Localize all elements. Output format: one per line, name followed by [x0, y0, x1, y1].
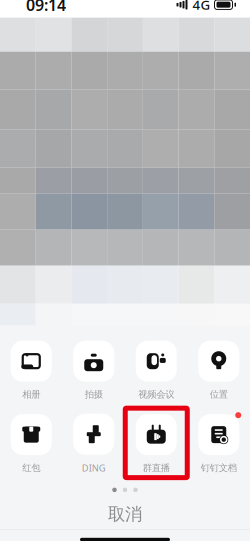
- staticText: DING: [82, 462, 106, 474]
- staticText: 视频会议: [138, 389, 174, 400]
- button[interactable]: 拍摄: [67, 339, 121, 400]
- button[interactable]: 群直播: [125, 408, 187, 478]
- staticText: 钉钉文档: [201, 462, 237, 474]
- button[interactable]: 位置: [192, 339, 246, 400]
- staticText: 拍摄: [85, 389, 103, 400]
- button[interactable]: 红包: [4, 412, 58, 474]
- staticText: 群直播: [143, 462, 170, 474]
- staticText: 红包: [22, 462, 40, 474]
- button[interactable]: 取消: [0, 499, 250, 529]
- button[interactable]: DING: [67, 412, 121, 474]
- staticText: 取消: [108, 503, 142, 525]
- button[interactable]: 钉钉文档: [192, 412, 246, 474]
- staticText: 相册: [22, 389, 40, 400]
- staticText: 位置: [210, 389, 228, 400]
- staticText: 09:14: [26, 0, 66, 15]
- button[interactable]: 视频会议: [129, 339, 183, 400]
- staticText: 4G: [192, 0, 210, 13]
- button[interactable]: 相册: [4, 339, 58, 400]
